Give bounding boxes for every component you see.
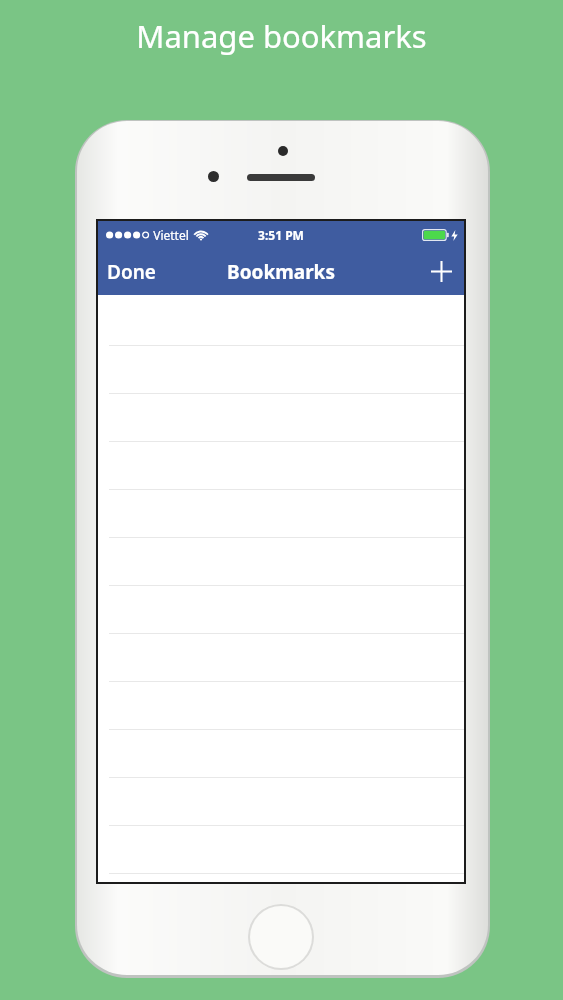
button[interactable] <box>98 681 464 729</box>
button[interactable] <box>98 441 464 489</box>
button[interactable] <box>98 489 464 537</box>
button[interactable] <box>98 393 464 441</box>
button[interactable]: Home <box>248 904 314 970</box>
button[interactable] <box>98 729 464 777</box>
button[interactable] <box>98 825 464 873</box>
staticText: 3:51 PM <box>258 227 304 243</box>
button[interactable] <box>98 777 464 825</box>
button[interactable]: Add bookmark <box>419 254 464 289</box>
button[interactable]: Done <box>98 253 165 291</box>
button[interactable] <box>98 345 464 393</box>
staticText: Done <box>107 259 156 285</box>
button[interactable] <box>98 585 464 633</box>
staticText: Bookmarks <box>227 259 335 285</box>
staticText: Manage bookmarks <box>136 15 427 57</box>
button[interactable] <box>98 633 464 681</box>
staticText: Viettel <box>153 227 189 243</box>
button[interactable] <box>98 873 464 882</box>
button[interactable] <box>98 537 464 585</box>
